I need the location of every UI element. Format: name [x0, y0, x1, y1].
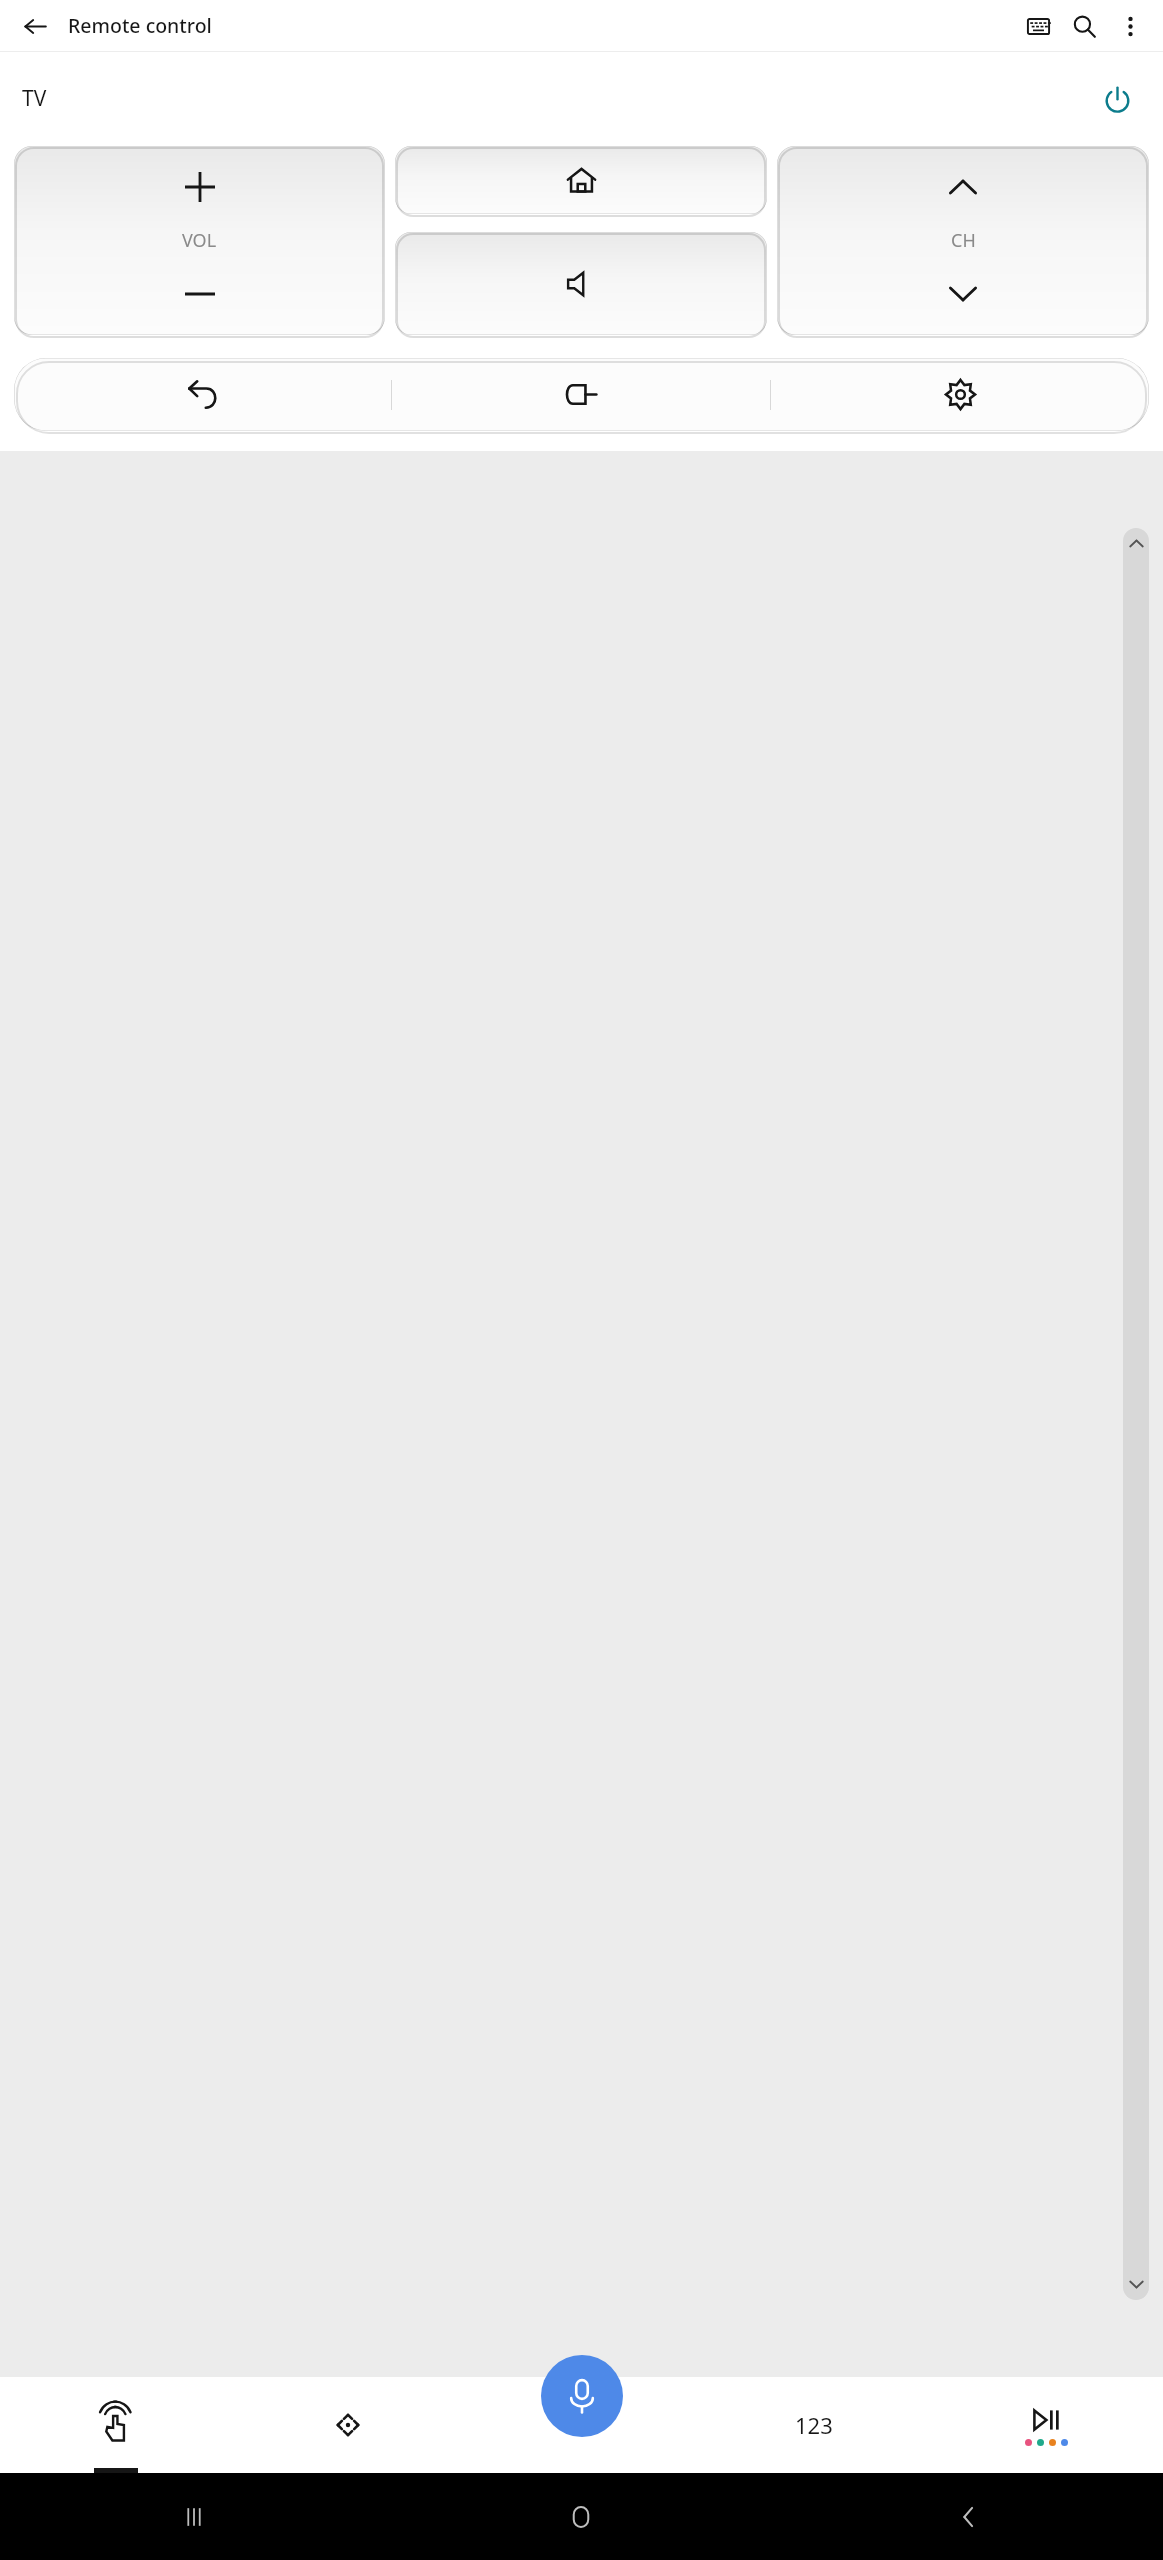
staticText: Remote control	[68, 12, 212, 39]
button[interactable]: Back	[12, 3, 58, 49]
button[interactable]: Channel	[777, 146, 1149, 335]
button[interactable]: Source	[392, 358, 770, 431]
button[interactable]: Voice	[541, 2355, 623, 2437]
button[interactable]: Search	[1061, 3, 1107, 49]
button[interactable]: Volume	[14, 146, 385, 335]
button[interactable]: Home	[395, 146, 767, 214]
button[interactable]: Back	[14, 358, 391, 431]
button[interactable]: Mute	[395, 232, 767, 335]
button[interactable]: Recents	[0, 2473, 387, 2560]
button[interactable]: Power	[1089, 71, 1145, 127]
button[interactable]: More options	[1107, 3, 1153, 49]
button[interactable]: Settings	[771, 358, 1149, 431]
button[interactable]: Touchpad	[0, 2377, 232, 2473]
staticText: VOL	[182, 228, 217, 253]
button[interactable]: D-pad	[232, 2377, 464, 2473]
button[interactable]: Home	[387, 2473, 775, 2560]
staticText: 123	[795, 2410, 833, 2440]
button[interactable]: Keypad	[1015, 3, 1061, 49]
button[interactable]: Playback	[930, 2377, 1163, 2473]
button[interactable]: Number pad	[697, 2377, 930, 2473]
staticText: CH	[951, 228, 976, 253]
staticText: TV	[22, 84, 47, 113]
button[interactable]: Back	[775, 2473, 1163, 2560]
